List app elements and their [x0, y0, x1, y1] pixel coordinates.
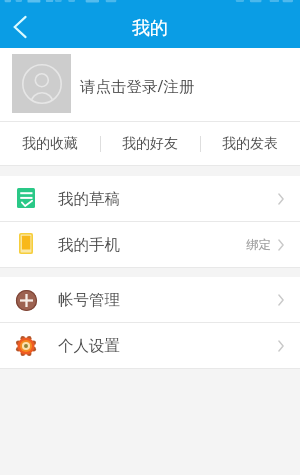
- staticText: 帐号管理: [58, 290, 120, 310]
- staticText: 我的好友: [122, 135, 178, 153]
- staticText: 我的发表: [222, 135, 278, 153]
- button[interactable]: 个人设置: [0, 323, 300, 369]
- button[interactable]: 我的发表: [200, 122, 300, 166]
- staticText: 我的收藏: [22, 135, 78, 153]
- button[interactable]: 帐号管理: [0, 277, 300, 323]
- staticText: 个人设置: [58, 336, 120, 356]
- button[interactable]: Back: [4, 11, 36, 43]
- staticText: 绑定: [246, 237, 271, 253]
- staticText: 我的: [132, 17, 168, 40]
- button[interactable]: 我的手机: [0, 222, 300, 268]
- staticText: 请点击登录/注册: [80, 75, 195, 96]
- button[interactable]: 我的草稿: [0, 176, 300, 222]
- button[interactable]: 请点击登录/注册: [0, 48, 300, 122]
- button[interactable]: 我的好友: [100, 122, 200, 166]
- staticText: 我的草稿: [58, 189, 120, 209]
- staticText: 我的手机: [58, 235, 120, 255]
- button[interactable]: 我的收藏: [0, 122, 100, 166]
